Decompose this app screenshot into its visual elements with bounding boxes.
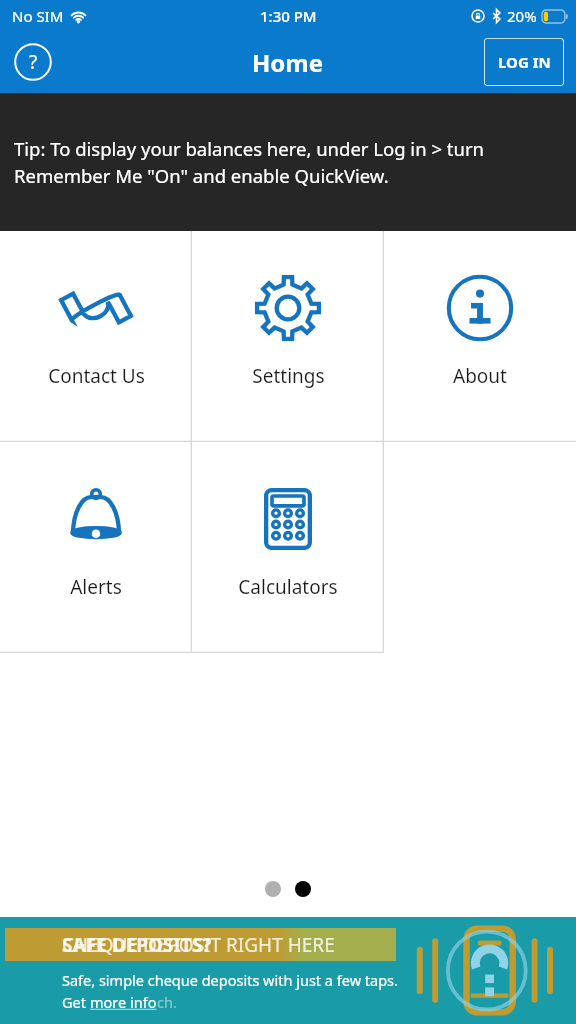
staticText: Alerts	[70, 574, 122, 600]
staticText: Calculators	[238, 574, 338, 600]
button[interactable]: About	[384, 231, 576, 442]
button[interactable]: Page 1	[265, 881, 281, 897]
button[interactable]: LOG IN	[484, 38, 564, 86]
button[interactable]: Tip: To display your balances here, unde…	[0, 93, 576, 231]
button[interactable]: Settings	[192, 231, 384, 442]
staticText: Contact Us	[48, 363, 145, 389]
staticText: ch.	[157, 992, 177, 1012]
staticText: About	[453, 363, 507, 389]
button[interactable]: CHEQUE DEPOSIT RIGHT HERE	[0, 917, 576, 1024]
staticText: CHEQUE DEPOSIT RIGHT HERE	[62, 932, 335, 958]
staticText: Safe, simple cheque deposits with just a…	[62, 970, 398, 990]
staticText: LOG IN	[498, 52, 551, 72]
staticText: 1:30 PM	[260, 6, 317, 26]
staticText: Tip: To display your balances here, unde…	[14, 136, 562, 189]
staticText: Home	[252, 46, 324, 79]
button[interactable]: Contact Us	[0, 231, 192, 442]
button[interactable]: more info	[90, 992, 157, 1012]
staticText: Get	[62, 992, 90, 1012]
staticText: ?	[29, 49, 38, 75]
button[interactable]: Calculators	[192, 442, 384, 653]
staticText: Settings	[252, 363, 325, 389]
staticText: 20%	[507, 6, 537, 26]
staticText: SAFE DEPOSITS?	[62, 932, 212, 958]
button[interactable]: Help	[14, 43, 52, 81]
button[interactable]: Page 2	[295, 881, 311, 897]
button[interactable]: Alerts	[0, 442, 192, 653]
staticText: No SIM	[12, 6, 64, 26]
